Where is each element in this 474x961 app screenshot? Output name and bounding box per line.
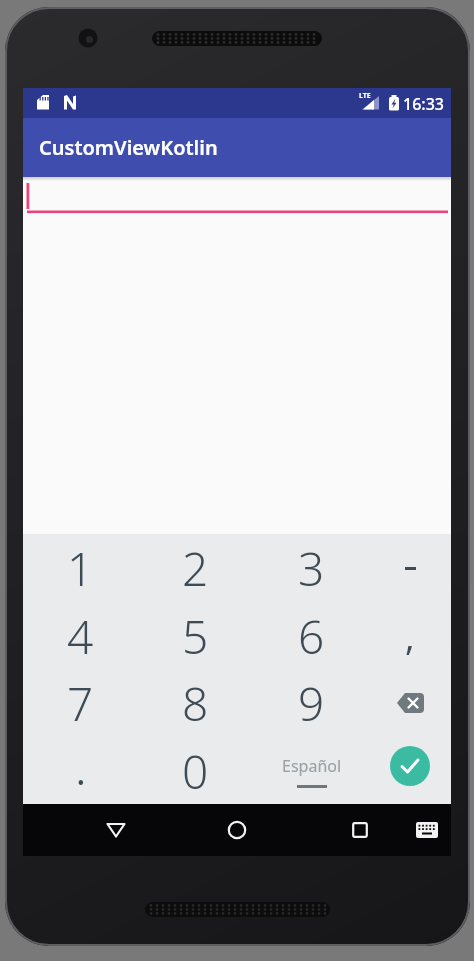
button[interactable]: 4 <box>23 602 138 670</box>
button[interactable] <box>369 737 451 805</box>
staticText: 16:33 <box>403 93 444 115</box>
button[interactable]: 0 <box>138 737 253 805</box>
button[interactable] <box>336 804 384 856</box>
button[interactable] <box>23 177 451 534</box>
staticText: LTE <box>359 91 371 101</box>
staticText: 8 <box>182 672 209 735</box>
button[interactable] <box>407 804 447 856</box>
button[interactable] <box>213 804 261 856</box>
button[interactable] <box>92 804 140 856</box>
button[interactable]: 1 <box>23 534 138 602</box>
staticText: 2 <box>182 537 209 600</box>
staticText: 5 <box>182 605 209 668</box>
button[interactable]: 7 <box>23 669 138 737</box>
staticText: 6 <box>298 605 325 668</box>
button[interactable]: . <box>23 737 138 805</box>
staticText: 7 <box>67 672 94 735</box>
staticText: , <box>405 612 415 661</box>
staticText: 4 <box>67 605 94 668</box>
button[interactable]: 9 <box>254 669 369 737</box>
button[interactable] <box>369 669 451 737</box>
button[interactable]: 6 <box>254 602 369 670</box>
staticText: 0 <box>182 740 209 803</box>
button[interactable]: 3 <box>254 534 369 602</box>
staticText: Español <box>282 755 342 777</box>
button[interactable]: 2 <box>138 534 253 602</box>
button[interactable]: 5 <box>138 602 253 670</box>
staticText: CustomViewKotlin <box>39 134 218 161</box>
staticText: 3 <box>298 537 325 600</box>
button[interactable]: Español <box>254 737 369 805</box>
staticText: 9 <box>298 672 325 735</box>
staticText: 1 <box>67 537 94 600</box>
staticText: . <box>76 747 86 796</box>
button[interactable] <box>369 534 451 602</box>
button[interactable] <box>254 737 369 805</box>
button[interactable]: 8 <box>138 669 253 737</box>
button[interactable]: , <box>369 602 451 670</box>
